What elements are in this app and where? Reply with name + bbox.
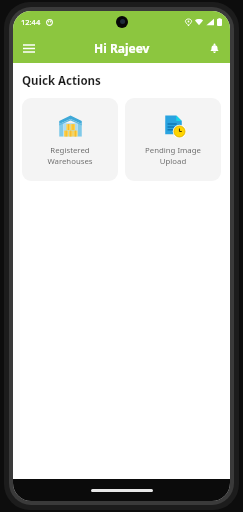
staticText: Pending Image Upload — [145, 145, 201, 167]
button[interactable]: Pending Image Upload — [125, 98, 221, 181]
staticText: Quick Actions — [22, 73, 101, 89]
button[interactable]: Open navigation menu — [18, 37, 40, 59]
staticText: Hi Rajeev — [94, 40, 150, 56]
button[interactable]: Registered Warehouses — [22, 98, 118, 181]
staticText: 12:44 — [21, 17, 41, 27]
button[interactable]: Notifications — [203, 37, 225, 59]
staticText: Registered Warehouses — [47, 145, 93, 167]
